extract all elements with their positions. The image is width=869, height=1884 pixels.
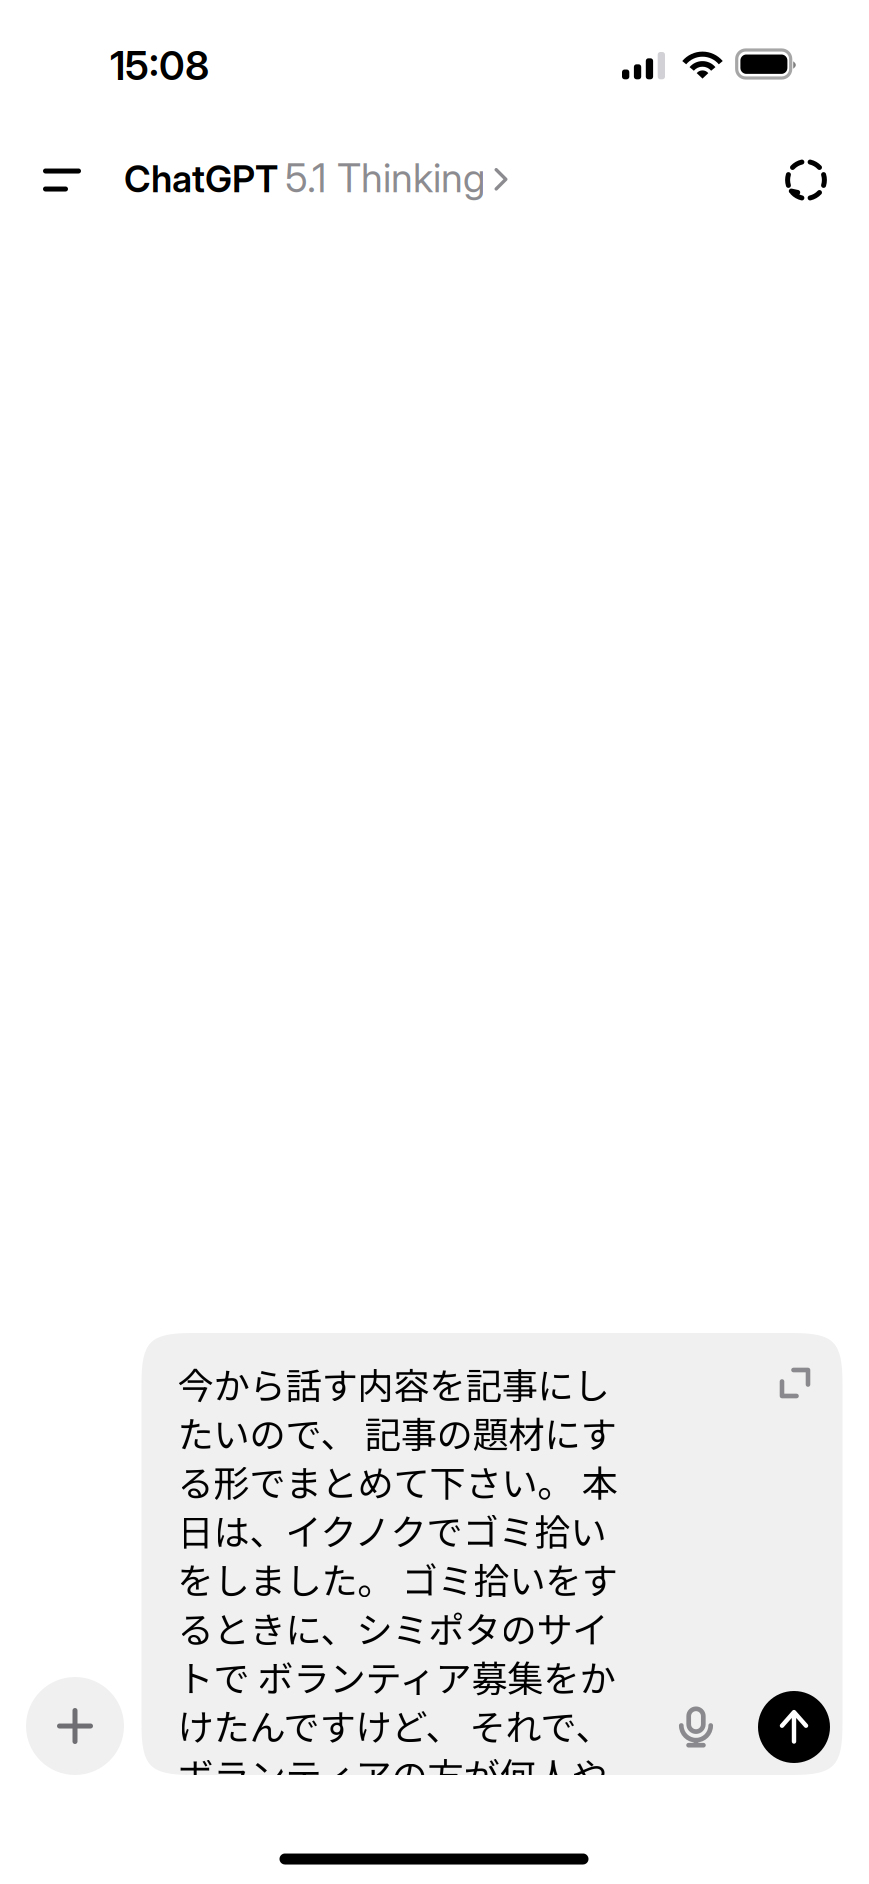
staticText: る形でまとめて下さい。 本 [177,1455,617,1507]
staticText: たいので、 記事の題材にす [177,1406,616,1458]
button[interactable]: Expand [763,1351,827,1415]
staticText: 今から話す内容を記事にし [177,1357,609,1409]
staticText: トで ボランティア募集をか [177,1650,615,1702]
staticText: るときに、シミポタのサイ [177,1601,608,1653]
staticText: 15:08 [110,41,209,90]
button[interactable]: Change model [477,144,525,214]
button[interactable]: Send [758,1691,830,1763]
staticText: をしました。 ゴミ拾いをす [177,1552,617,1605]
button[interactable]: ChatGPT [124,136,514,220]
staticText: ボランティアの方が何人や [177,1748,607,1800]
button[interactable]: Sidebar [20,138,104,222]
button[interactable]: Dictate [658,1689,734,1765]
button[interactable]: Temporary chat [764,138,848,222]
staticText: けたんですけど、 それで、 [177,1699,611,1751]
staticText: 5.1 Thinking [285,154,486,202]
staticText: 日は、イクノクでゴミ拾い [177,1504,606,1556]
button[interactable]: Add attachment [26,1677,124,1775]
staticText: ChatGPT [124,157,278,201]
